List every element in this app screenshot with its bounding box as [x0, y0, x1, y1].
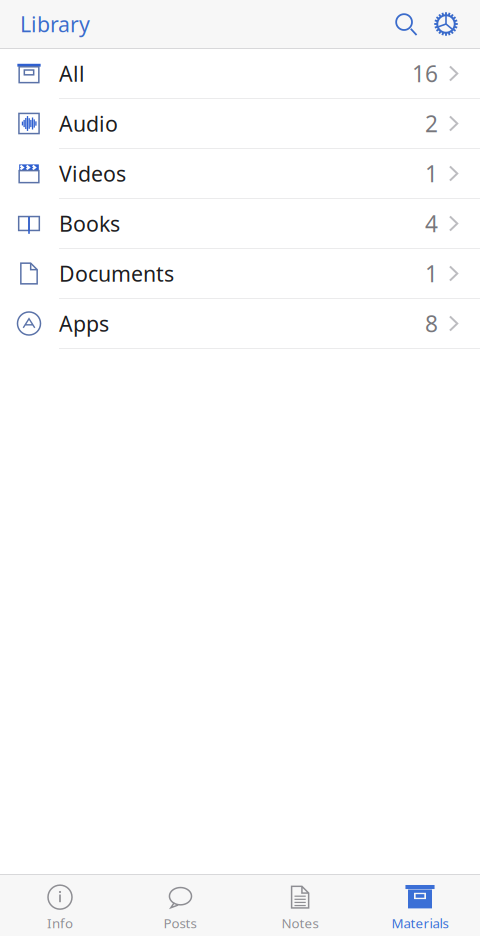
staticText: Audio	[59, 109, 118, 138]
button[interactable]: Posts	[120, 873, 240, 936]
staticText: 1	[425, 258, 438, 288]
staticText: Library	[20, 10, 90, 38]
staticText: All	[59, 59, 85, 88]
staticText: Materials	[391, 914, 448, 932]
button[interactable]: Search	[388, 2, 424, 46]
button[interactable]: Audio	[0, 99, 480, 149]
button[interactable]: Library	[0, 0, 98, 48]
staticText: Notes	[281, 914, 318, 932]
staticText: 8	[425, 308, 438, 338]
staticText: Posts	[163, 914, 196, 932]
staticText: Info	[47, 914, 73, 932]
staticText: 16	[412, 58, 438, 88]
staticText: Apps	[59, 309, 109, 338]
button[interactable]: All	[0, 49, 480, 99]
staticText: 2	[425, 108, 438, 138]
staticText: 4	[425, 208, 438, 238]
button[interactable]: Info	[0, 873, 120, 936]
button[interactable]: Videos	[0, 149, 480, 199]
button[interactable]: Apps	[0, 299, 480, 349]
staticText: Books	[59, 209, 120, 238]
button[interactable]: Notes	[240, 873, 360, 936]
button[interactable]: Materials	[360, 873, 480, 936]
button[interactable]: Settings	[424, 2, 468, 46]
button[interactable]: Documents	[0, 249, 480, 299]
staticText: Videos	[59, 159, 126, 188]
button[interactable]: Books	[0, 199, 480, 249]
staticText: 1	[425, 158, 438, 188]
staticText: Documents	[59, 259, 174, 288]
